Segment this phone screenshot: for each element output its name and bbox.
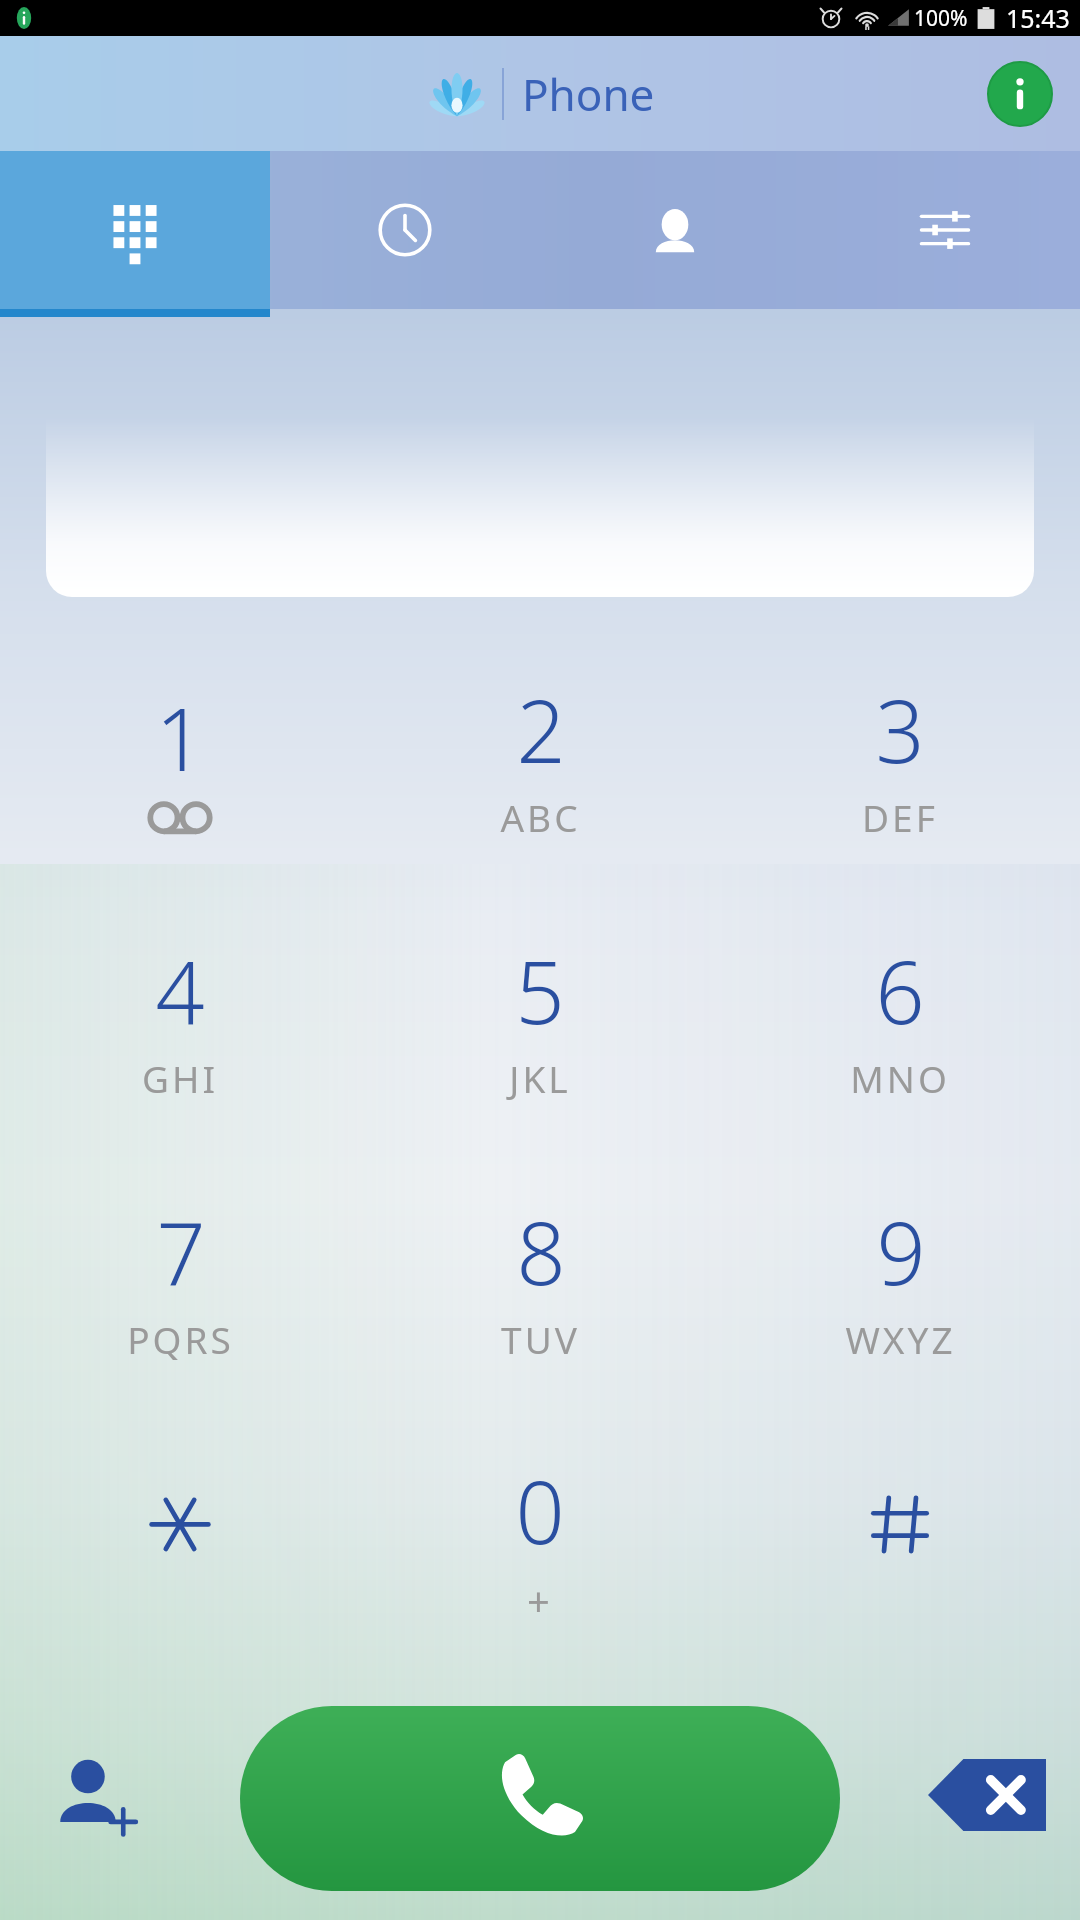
staticText: Phone [522,64,655,124]
button[interactable]: Key 1 [0,625,360,887]
button[interactable]: Key * [0,1409,360,1670]
button[interactable]: Keypad [0,151,270,309]
staticText: MNO [850,1053,950,1103]
button[interactable]: Key # [720,1409,1080,1670]
staticText: ABC [500,792,581,842]
staticText: 3 [875,671,925,788]
staticText: 4 [155,932,205,1049]
button[interactable]: Info [988,62,1052,126]
staticText: 7 [156,1193,206,1310]
button[interactable]: Call [240,1706,840,1891]
button[interactable]: Key 9 [720,1148,1080,1409]
button[interactable]: Key 6 [720,887,1080,1148]
staticText: PQRS [127,1314,234,1364]
staticText: 5 [515,932,565,1049]
button[interactable]: Key 7 [0,1148,360,1409]
button[interactable]: Key 0 [360,1409,720,1670]
button[interactable]: Key 8 [360,1148,720,1409]
staticText: + [527,1573,553,1627]
button[interactable]: Recents [270,151,540,309]
button[interactable]: Settings [810,151,1080,309]
staticText: 8 [516,1193,566,1310]
staticText: DEF [862,792,938,842]
staticText: 0 [515,1452,565,1569]
staticText: TUV [501,1314,580,1364]
button[interactable]: Contacts [540,151,810,309]
staticText: 100% [914,4,968,33]
button[interactable]: Key 2 [360,625,720,887]
staticText: GHI [142,1053,218,1103]
button[interactable]: Add contact [38,1740,148,1850]
staticText: 6 [875,932,925,1049]
staticText: 9 [876,1193,926,1310]
button[interactable]: Key 4 [0,887,360,1148]
button[interactable]: Phone number input [46,417,1034,597]
staticText: 15:43 [1006,1,1070,35]
staticText: 2 [516,671,566,788]
staticText: 1 [155,679,205,796]
staticText: JKL [509,1053,571,1103]
button[interactable]: Key 3 [720,625,1080,887]
staticText: WXYZ [845,1314,956,1364]
button[interactable]: Backspace [922,1730,1052,1860]
button[interactable]: Key 5 [360,887,720,1148]
